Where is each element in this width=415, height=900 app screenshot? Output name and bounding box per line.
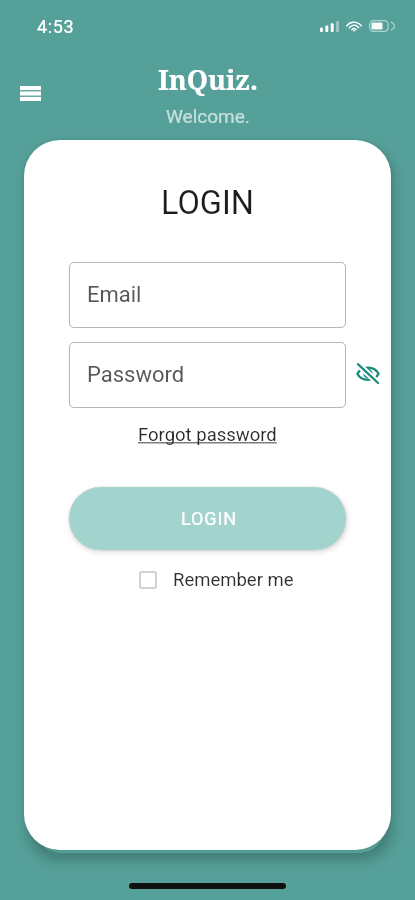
staticText: InQuiz. xyxy=(158,61,258,98)
button[interactable]: Remember me xyxy=(130,567,285,593)
button[interactable]: Forgot password xyxy=(132,422,283,448)
staticText: Password xyxy=(87,362,185,388)
staticText: Remember me xyxy=(173,569,294,591)
staticText: 4:53 xyxy=(37,16,75,37)
button[interactable]: Show password xyxy=(352,357,384,389)
staticText: Forgot password xyxy=(138,424,277,446)
button[interactable]: Password xyxy=(69,342,346,408)
staticText: Email xyxy=(87,282,142,308)
staticText: Welcome. xyxy=(166,105,250,127)
staticText: LOGIN xyxy=(181,508,238,529)
button[interactable]: Email xyxy=(69,262,346,328)
staticText: LOGIN xyxy=(161,184,254,222)
button[interactable]: LOGIN xyxy=(69,487,346,550)
button[interactable]: Menu xyxy=(12,75,48,111)
